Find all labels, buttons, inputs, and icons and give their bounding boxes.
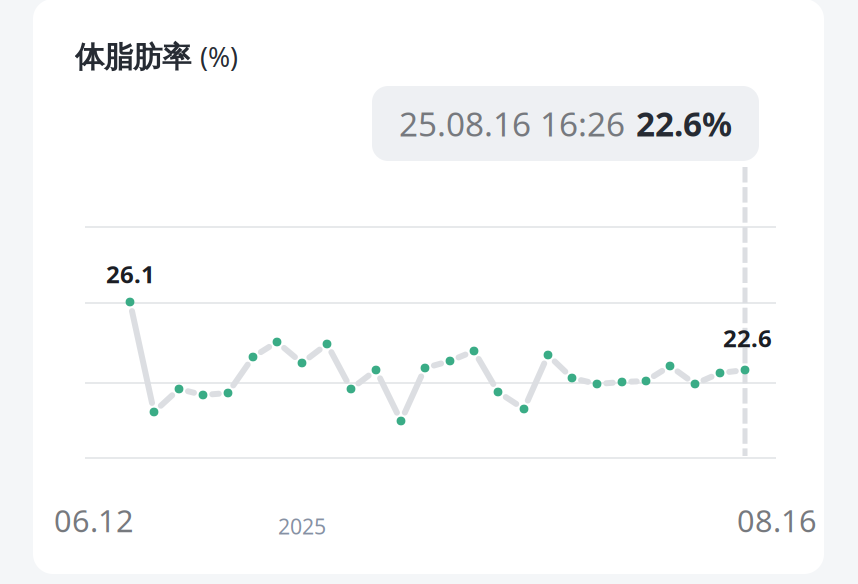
staticText: 25.08.16 16:26 bbox=[399, 101, 625, 146]
button[interactable]: 25.08.16 16:26 bbox=[372, 86, 759, 161]
staticText: 2025 bbox=[278, 512, 326, 540]
staticText: 26.1 bbox=[106, 258, 155, 290]
staticText: 22.6 bbox=[723, 322, 772, 354]
staticText: 体脂肪率 bbox=[75, 39, 191, 75]
staticText: 06.12 bbox=[54, 500, 134, 541]
staticText: (%) bbox=[200, 39, 238, 74]
staticText: 22.6% bbox=[636, 101, 732, 146]
staticText: 08.16 bbox=[737, 500, 817, 541]
